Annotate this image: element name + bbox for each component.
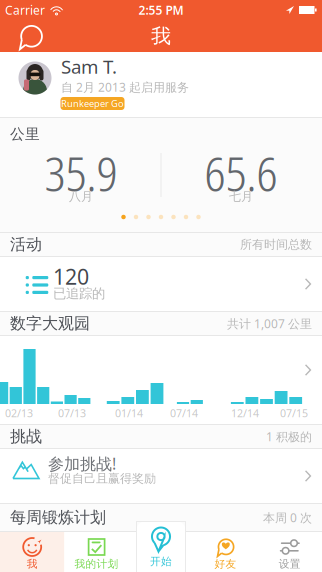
- staticText: 所有时间总数: [240, 237, 312, 252]
- staticText: 督促自己且赢得奖励: [48, 471, 156, 486]
- staticText: 我: [27, 557, 38, 570]
- button[interactable]: 好友: [193, 532, 258, 572]
- button[interactable]: 设置: [258, 532, 322, 572]
- button[interactable]: 120: [0, 257, 322, 311]
- button[interactable]: Runkeeper Go: [60, 97, 124, 110]
- staticText: 本周 0 次: [263, 509, 312, 525]
- button[interactable]: 参加挑战!: [0, 449, 322, 503]
- staticText: 07/15: [280, 406, 308, 420]
- button[interactable]: 开始: [136, 521, 186, 572]
- button[interactable]: 我: [0, 532, 64, 572]
- button[interactable]: 我的计划: [64, 532, 129, 572]
- button[interactable]: 02/13: [0, 336, 322, 424]
- staticText: 开始: [150, 555, 172, 568]
- staticText: Runkeeper Go: [61, 97, 124, 110]
- staticText: 七月: [229, 189, 253, 204]
- staticText: 已追踪的: [53, 285, 105, 302]
- staticText: 参加挑战!: [48, 453, 116, 474]
- button[interactable]: 消息: [0, 23, 43, 49]
- button[interactable]: 开始: [129, 532, 193, 572]
- staticText: 07/13: [58, 406, 86, 420]
- staticText: 每周锻炼计划: [10, 508, 106, 527]
- staticText: Sam T.: [61, 54, 117, 79]
- staticText: 开始: [150, 557, 172, 570]
- staticText: 2:55 PM: [138, 2, 183, 18]
- staticText: 12/14: [231, 406, 259, 420]
- staticText: 07/14: [170, 406, 198, 420]
- staticText: 好友: [214, 557, 236, 570]
- staticText: 挑战: [10, 427, 42, 446]
- staticText: 35.9: [44, 140, 117, 206]
- staticText: 公里: [10, 125, 40, 143]
- staticText: 我的计划: [75, 557, 119, 570]
- staticText: 数字大观园: [10, 314, 90, 333]
- staticText: 65.6: [204, 140, 277, 206]
- staticText: 02/13: [5, 406, 33, 420]
- staticText: 1 积极的: [266, 428, 312, 444]
- staticText: 共计 1,007 公里: [227, 315, 312, 331]
- staticText: 自 2月 2013 起启用服务: [61, 79, 189, 95]
- staticText: 八月: [69, 189, 93, 204]
- staticText: 120: [53, 262, 89, 291]
- staticText: 我: [151, 24, 171, 48]
- staticText: 01/14: [115, 406, 143, 420]
- staticText: Carrier: [5, 2, 45, 18]
- staticText: 设置: [279, 557, 301, 570]
- staticText: 活动: [10, 235, 42, 254]
